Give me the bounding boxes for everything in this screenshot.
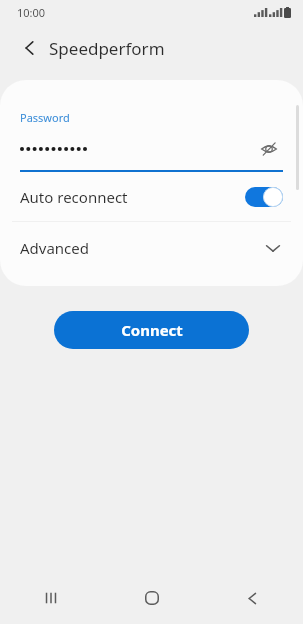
button[interactable]: Auto reconnect toggle (245, 187, 283, 207)
button[interactable]: Back (12, 30, 48, 66)
button[interactable]: Show password (255, 135, 283, 163)
button[interactable]: Advanced (0, 222, 303, 274)
staticText: 10:00 (17, 5, 46, 20)
button[interactable]: Recents (0, 572, 101, 624)
button[interactable]: Connect (54, 311, 249, 349)
button[interactable]: Home (101, 572, 202, 624)
staticText: Advanced (20, 238, 90, 258)
button[interactable]: Password (0, 80, 303, 172)
staticText: Speedperform (49, 37, 165, 60)
button[interactable]: Back (202, 572, 303, 624)
staticText: Password (20, 110, 70, 125)
button[interactable]: Auto reconnect (0, 172, 303, 221)
staticText: Auto reconnect (20, 187, 128, 207)
staticText: Connect (121, 320, 183, 340)
